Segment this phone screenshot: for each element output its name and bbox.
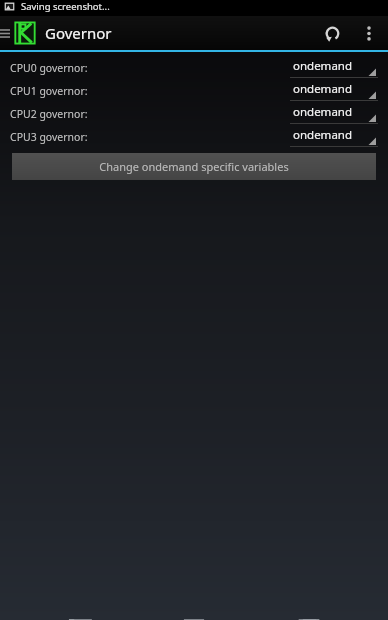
button[interactable]: ondemand <box>290 103 378 125</box>
button[interactable]: Open navigation drawer <box>0 16 10 50</box>
button[interactable]: ondemand <box>290 126 378 148</box>
staticText: CPU3 governor: <box>10 130 88 144</box>
button[interactable]: Refresh <box>310 16 354 50</box>
staticText: Governor <box>45 23 112 43</box>
button[interactable]: CPU1 governor: <box>0 79 388 102</box>
staticText: ondemand <box>293 104 353 120</box>
button[interactable]: Change ondemand specific variables <box>12 153 376 180</box>
button[interactable]: ondemand <box>290 57 378 79</box>
staticText: Change ondemand specific variables <box>99 159 289 174</box>
staticText: ondemand <box>293 127 353 143</box>
staticText: ondemand <box>293 81 353 97</box>
button[interactable]: More options <box>354 16 384 50</box>
staticText: CPU2 governor: <box>10 107 88 121</box>
staticText: CPU0 governor: <box>10 61 88 75</box>
button[interactable]: CPU3 governor: <box>0 125 388 148</box>
button[interactable]: ondemand <box>290 80 378 102</box>
button[interactable]: CPU0 governor: <box>0 56 388 79</box>
staticText: CPU1 governor: <box>10 84 88 98</box>
staticText: ondemand <box>293 58 353 74</box>
staticText: Saving screenshot... <box>21 0 110 13</box>
button[interactable]: CPU2 governor: <box>0 102 388 125</box>
